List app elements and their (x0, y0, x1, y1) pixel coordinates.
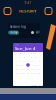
staticText: 33 (31, 72, 33, 74)
staticText: 2023 (15, 44, 19, 46)
staticText: All (36, 31, 40, 34)
staticText: 35 (38, 72, 40, 74)
staticText: 18 (27, 64, 29, 66)
staticText: 34 (34, 72, 36, 74)
staticText: HISTORY (19, 8, 37, 14)
staticText: 3 (24, 56, 25, 58)
staticText: 28 (38, 68, 40, 70)
staticText: OK (39, 84, 41, 86)
staticText: 30 (20, 72, 22, 74)
staticText: 6 (35, 56, 36, 58)
staticText: 9 (20, 60, 21, 62)
staticText: 9:41 (24, 1, 31, 5)
staticText: 26 (31, 68, 33, 70)
staticText: 25 (27, 68, 29, 70)
staticText: CANCEL (31, 84, 37, 86)
staticText: 29 (16, 72, 18, 74)
staticText: 27 (34, 68, 36, 70)
staticText: Session log (10, 25, 26, 28)
staticText: 11 (27, 60, 29, 62)
staticText: 20 (34, 64, 36, 66)
staticText: 5 (31, 56, 32, 58)
staticText: 19 (31, 64, 33, 66)
staticText: 31 (23, 72, 25, 74)
staticText: 22 (16, 68, 18, 70)
staticText: 17 (23, 64, 25, 66)
staticText: 15 (16, 64, 18, 66)
button[interactable]: Menu (45, 7, 52, 14)
staticText: 13 (34, 60, 36, 62)
staticText: 14 (38, 60, 40, 62)
staticText: 12 (31, 60, 33, 62)
staticText: Sun, Jun 4 (15, 46, 35, 51)
staticText: 10 (23, 60, 25, 62)
staticText: Today (10, 31, 17, 34)
staticText: 24 (23, 68, 25, 70)
staticText: 8 (16, 60, 17, 62)
staticText: 32 (27, 72, 29, 74)
button[interactable]: CANCEL (31, 84, 37, 86)
staticText: 21 (38, 64, 40, 66)
staticText: 2 (20, 56, 21, 58)
staticText: 23 (20, 68, 22, 70)
button[interactable]: OK (39, 84, 41, 86)
staticText: 16 (20, 64, 22, 66)
staticText: 1 (16, 56, 17, 58)
button[interactable]: Back (4, 7, 11, 14)
